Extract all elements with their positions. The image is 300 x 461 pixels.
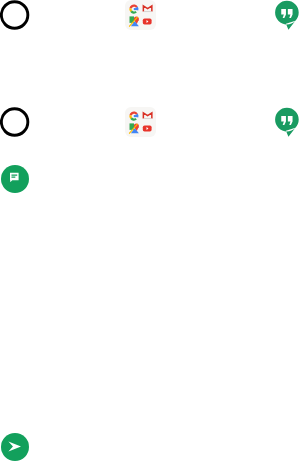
button[interactable]: Hangouts [275,107,299,136]
button[interactable]: Messages [1,165,29,193]
button[interactable]: Circle [0,0,30,30]
button[interactable]: Circle [0,107,30,137]
button[interactable]: Google apps folder [125,107,156,137]
button[interactable]: Send [1,433,29,461]
button[interactable]: Google apps folder [125,0,156,30]
button[interactable]: Hangouts [275,0,299,29]
